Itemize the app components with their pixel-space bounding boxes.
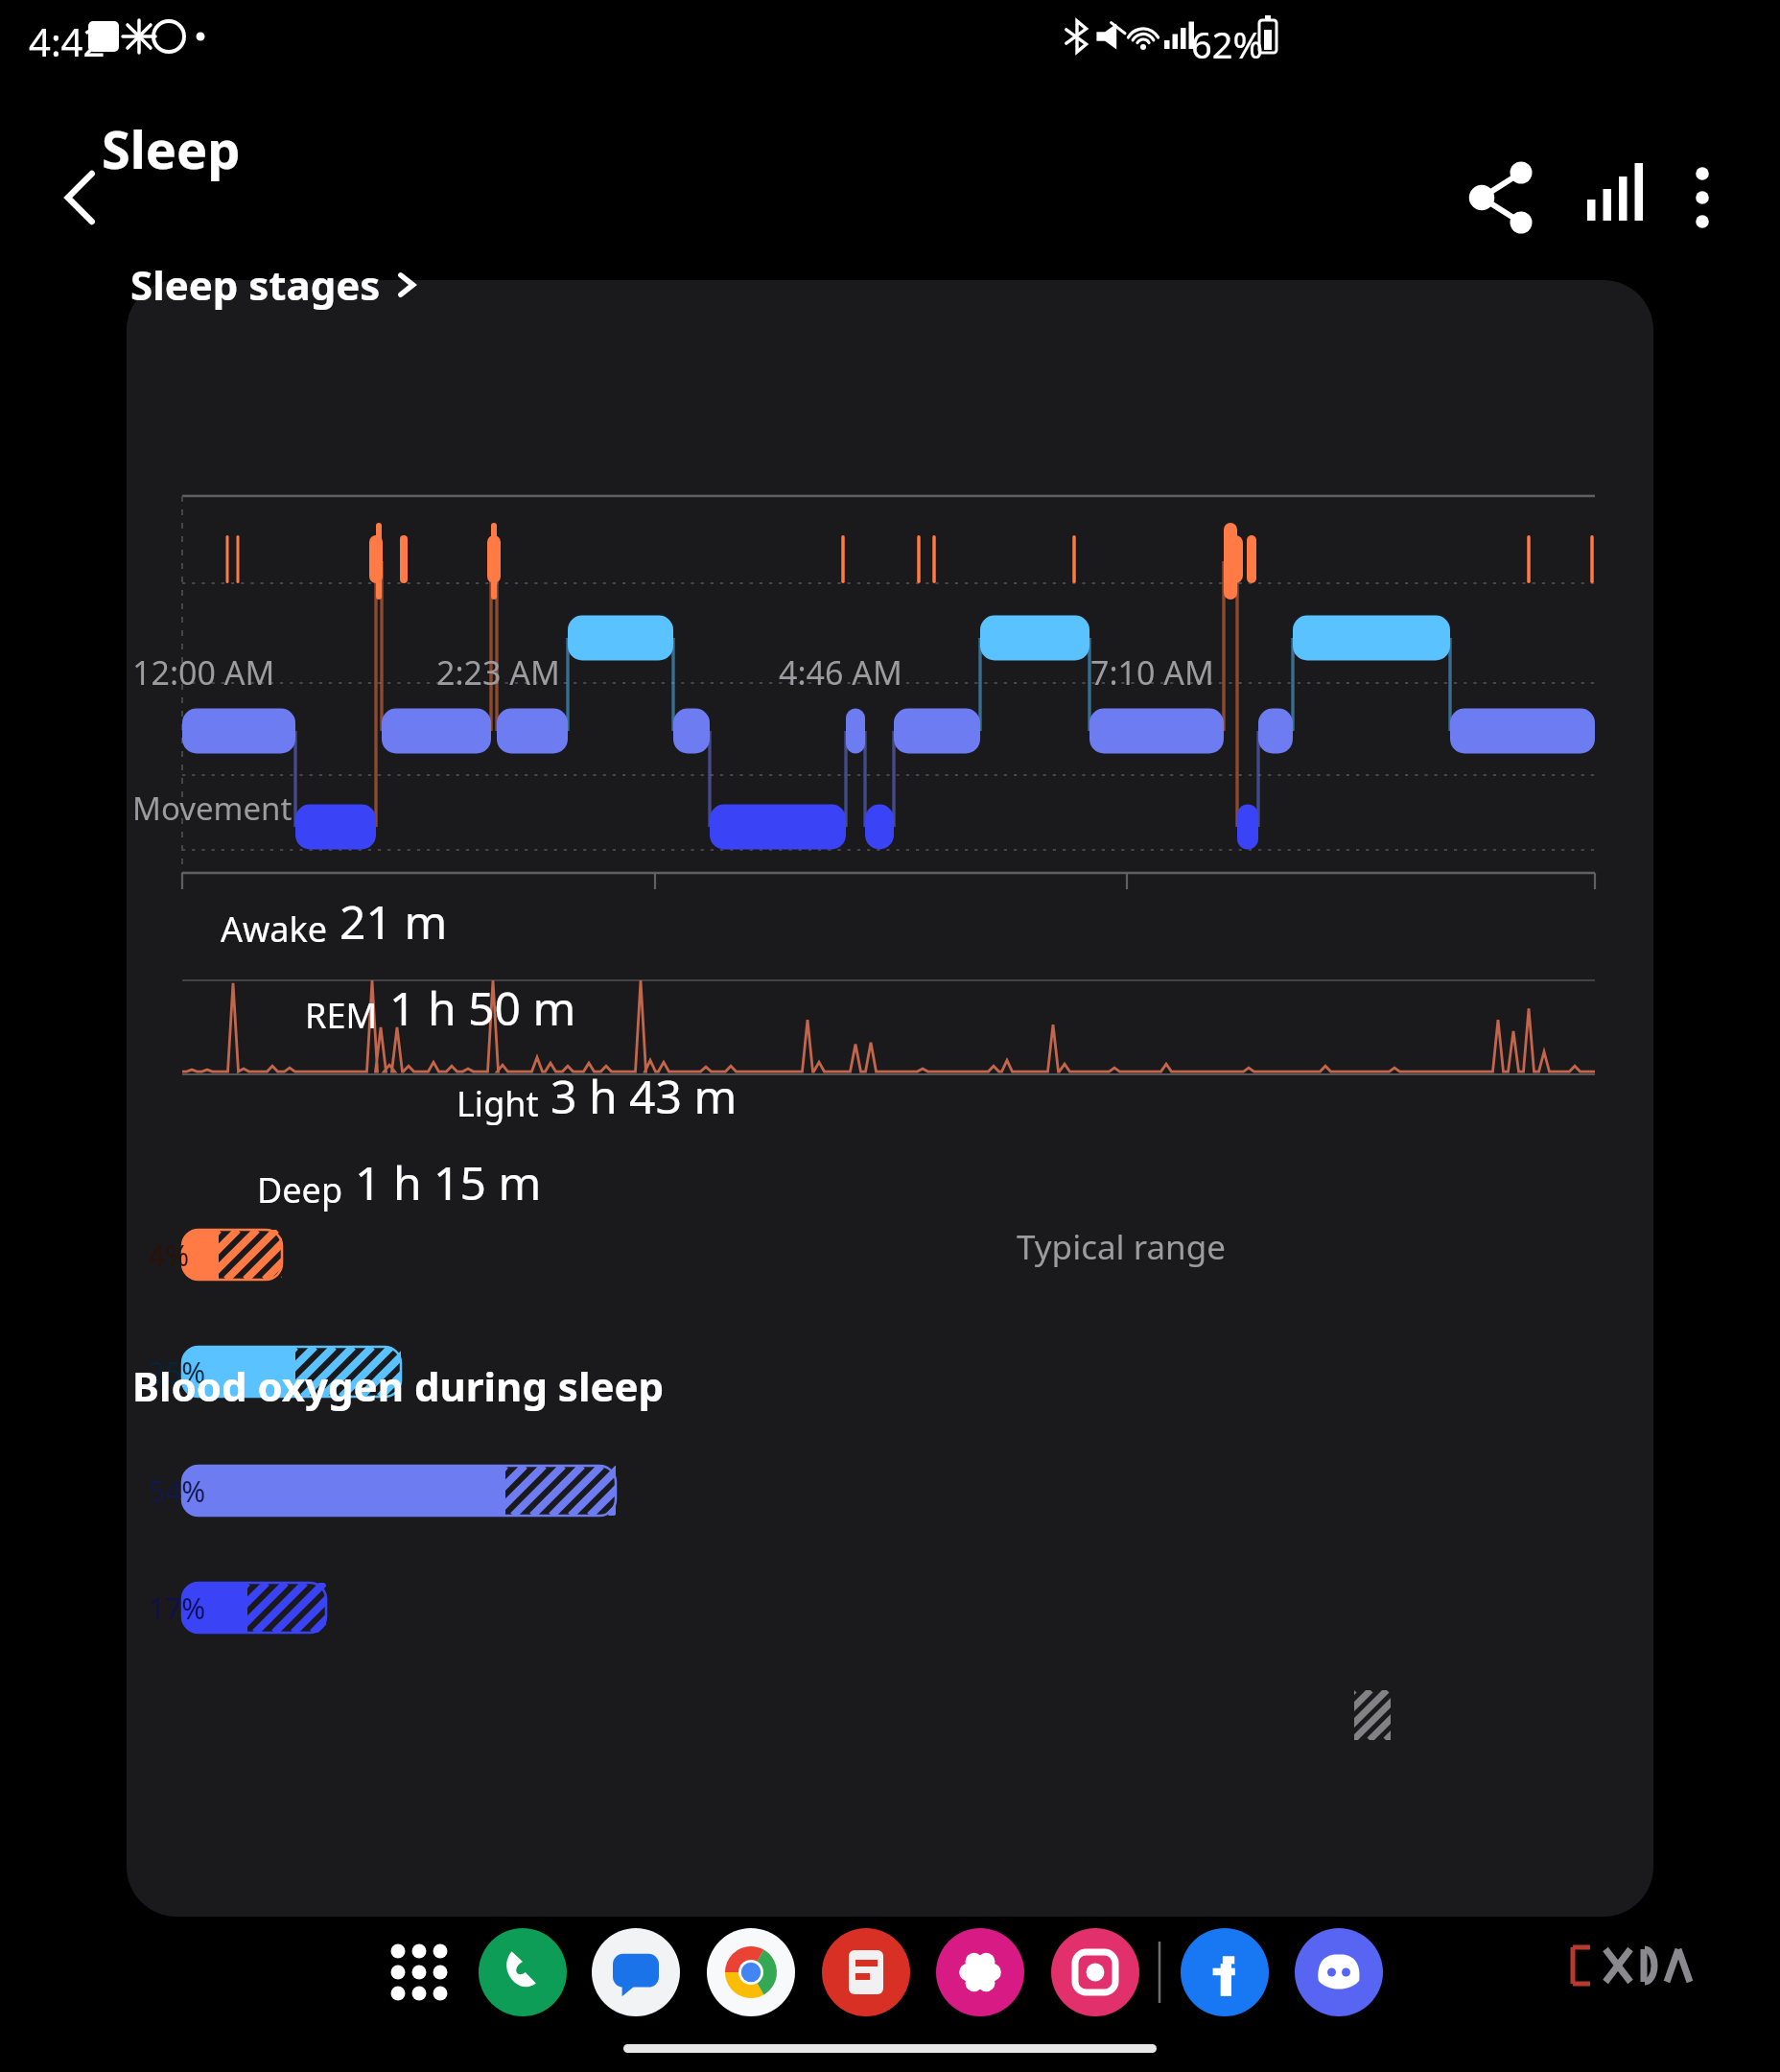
button[interactable]: Discord <box>1296 1928 1382 2014</box>
button[interactable]: Awake <box>221 890 448 953</box>
button[interactable]: News <box>823 1928 909 2014</box>
staticText: 2:23 AM <box>436 650 560 695</box>
staticText: 54% <box>149 1472 206 1511</box>
staticText: Blood oxygen during sleep <box>132 1358 665 1413</box>
staticText: 62% <box>1191 19 1264 69</box>
staticText: Sleep <box>102 113 241 184</box>
button[interactable]: Blood oxygen during sleep <box>132 1358 665 1413</box>
staticText: 4:42 <box>29 15 105 67</box>
staticText: 7:10 AM <box>1090 650 1214 695</box>
staticText: 25% <box>149 1353 206 1392</box>
staticText: 3 h 43 m <box>550 1065 738 1127</box>
button[interactable]: Back <box>27 110 113 197</box>
button[interactable]: Sleep <box>102 113 241 184</box>
button[interactable]: Facebook <box>1182 1928 1268 2014</box>
button[interactable]: More options <box>1680 111 1755 198</box>
staticText: 17% <box>149 1589 206 1628</box>
button[interactable]: Messages <box>593 1928 679 2014</box>
staticText: Light <box>457 1080 539 1127</box>
staticText: Sleep stages <box>130 257 381 312</box>
button[interactable]: Chrome <box>708 1928 794 2014</box>
button[interactable]: Instagram <box>1052 1928 1138 2014</box>
staticText: 1 h 50 m <box>389 977 576 1039</box>
staticText: Awake <box>221 906 328 953</box>
button[interactable]: Charts <box>1577 111 1663 198</box>
staticText: Typical range <box>1017 1224 1227 1270</box>
button[interactable]: Photos <box>937 1928 1023 2014</box>
button[interactable]: Light <box>457 1065 738 1127</box>
staticText: REM <box>305 992 378 1039</box>
button[interactable]: REM <box>305 977 576 1039</box>
staticText: 1 h 15 m <box>355 1151 542 1213</box>
staticText: 12:00 AM <box>132 650 275 695</box>
button[interactable]: Sleep stages <box>130 257 417 312</box>
button[interactable]: Phone <box>480 1928 566 2014</box>
button[interactable]: Share <box>1454 111 1540 198</box>
staticText: 21 m <box>340 890 448 953</box>
staticText: Deep <box>257 1166 343 1213</box>
staticText: 4% <box>149 1236 190 1275</box>
staticText: 4:46 AM <box>779 650 902 695</box>
button[interactable]: All apps <box>376 1928 462 2014</box>
staticText: Movement <box>132 787 293 830</box>
button[interactable]: Deep <box>257 1151 542 1213</box>
